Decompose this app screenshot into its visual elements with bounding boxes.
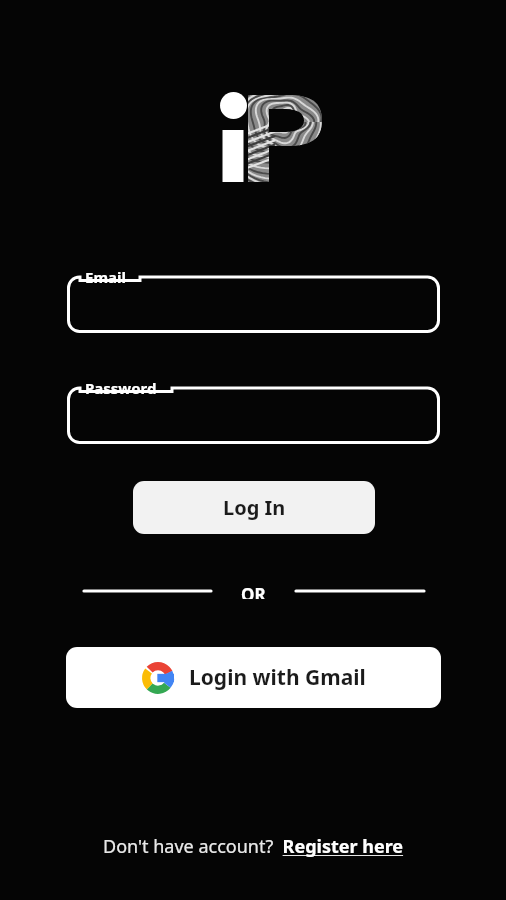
button[interactable]: Password [67, 376, 440, 444]
staticText: Log In [223, 494, 286, 521]
button[interactable]: Log In [133, 481, 375, 534]
staticText: Don't have account? Register here [103, 834, 404, 859]
staticText: Email [85, 267, 126, 287]
button[interactable]: Login with Gmail [66, 647, 441, 708]
button[interactable]: Email [67, 265, 440, 333]
staticText: OR [241, 583, 266, 599]
staticText: Password [85, 378, 157, 398]
staticText: Login with Gmail [189, 663, 366, 692]
button[interactable]: Don't have account? Register here [103, 834, 404, 859]
